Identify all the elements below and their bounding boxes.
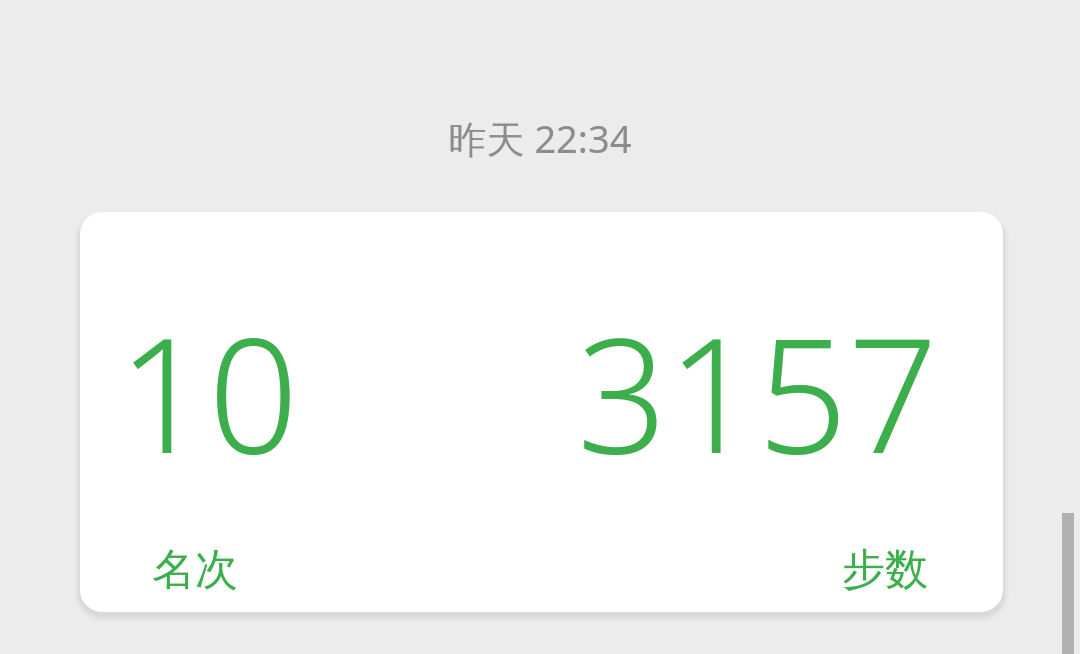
button[interactable]: 10 bbox=[80, 212, 1003, 612]
staticText: 昨天 22:34 bbox=[448, 112, 632, 164]
staticText: 3157 bbox=[577, 284, 938, 499]
staticText: 步数 bbox=[842, 543, 928, 597]
staticText: 10 bbox=[118, 284, 299, 499]
staticText: 名次 bbox=[152, 543, 238, 597]
